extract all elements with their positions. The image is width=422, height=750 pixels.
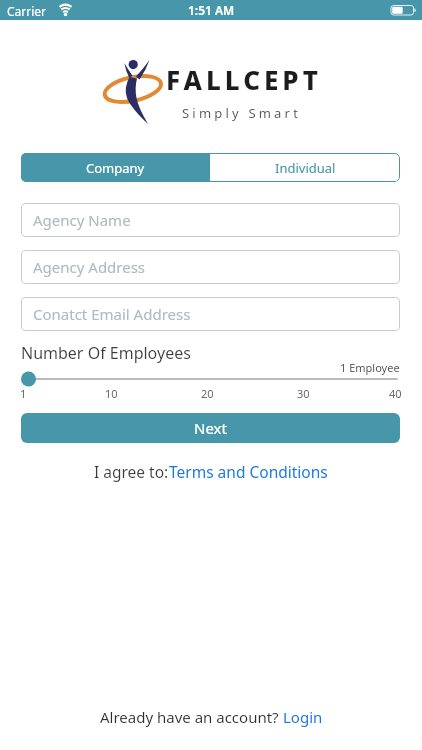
staticText: FALLCEPT <box>166 62 322 97</box>
button[interactable]: Terms and Conditions <box>169 461 328 482</box>
staticText: Individual <box>275 159 336 177</box>
staticText: I agree to: <box>94 461 169 482</box>
button[interactable]: Agency Name <box>21 203 400 237</box>
staticText: Agency Name <box>33 210 131 230</box>
staticText: 20 <box>201 386 214 401</box>
button[interactable]: Individual <box>210 153 400 182</box>
staticText: 10 <box>105 386 118 401</box>
staticText: 30 <box>297 386 310 401</box>
staticText: 40 <box>389 386 402 401</box>
button[interactable]: Next <box>21 413 400 443</box>
staticText: Conatct Email Address <box>33 304 191 324</box>
staticText: Agency Address <box>33 257 146 277</box>
button[interactable]: Conatct Email Address <box>21 297 400 331</box>
staticText: 1 Employee <box>340 360 400 375</box>
staticText: Number Of Employees <box>21 342 191 364</box>
staticText: Already have an account? <box>100 707 283 727</box>
button[interactable] <box>21 371 400 387</box>
staticText: Company <box>86 159 145 177</box>
button[interactable]: Agency Address <box>21 250 400 284</box>
staticText: Next <box>194 418 227 438</box>
button[interactable]: Company <box>21 153 210 182</box>
staticText: 1 <box>20 386 27 401</box>
staticText: Simply Smart <box>182 104 302 122</box>
staticText: Carrier <box>7 3 47 19</box>
staticText: 1:51 AM <box>188 2 235 18</box>
button[interactable]: Login <box>283 707 323 727</box>
